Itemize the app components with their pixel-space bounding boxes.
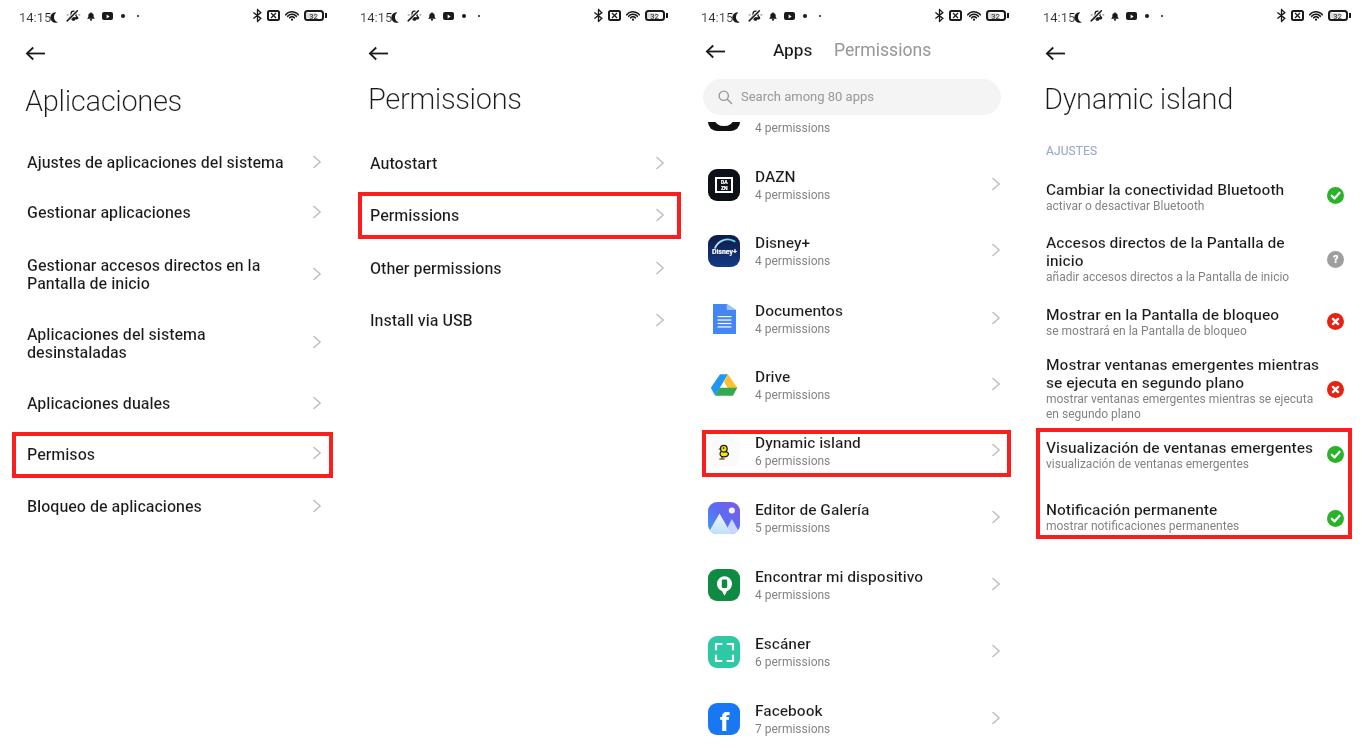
button[interactable]: f xyxy=(682,686,1024,752)
button[interactable]: Gestionar aplicaciones xyxy=(0,190,341,234)
button[interactable]: Back xyxy=(358,33,398,73)
button[interactable]: Editor de Galería xyxy=(682,485,1024,551)
button[interactable]: Apps xyxy=(764,32,822,68)
button[interactable]: Aplicaciones del sistema desinstaladas xyxy=(0,305,341,363)
staticText: 14:15 xyxy=(1043,10,1076,25)
staticText: Notificación permanente xyxy=(1046,501,1322,519)
staticText: visualización de ventanas emergentes xyxy=(1046,457,1322,471)
button[interactable]: Mostrar ventanas emergentes mientras se … xyxy=(1024,352,1366,427)
button[interactable]: Mostrar en la Pantalla de bloqueo xyxy=(1024,302,1366,344)
staticText: 7 permissions xyxy=(755,722,831,736)
staticText: añadir accesos directos a la Pantalla de… xyxy=(1046,270,1322,284)
staticText: ZN xyxy=(721,185,728,191)
staticText: Accesos directos de la Pantalla de inici… xyxy=(1046,234,1322,270)
staticText: Visualización de ventanas emergentes xyxy=(1046,439,1322,457)
staticText: Editor de Galería xyxy=(755,501,870,519)
staticText: Cambiar la conectividad Bluetooth xyxy=(1046,181,1322,199)
staticText: Ajustes de aplicaciones del sistema xyxy=(27,153,299,172)
staticText: se mostrará en la Pantalla de bloqueo xyxy=(1046,324,1322,338)
staticText: 32 xyxy=(309,12,319,21)
staticText: Mostrar en la Pantalla de bloqueo xyxy=(1046,306,1322,324)
staticText: 6 permissions xyxy=(755,655,831,669)
staticText: Aplicaciones del sistema desinstaladas xyxy=(27,325,299,362)
staticText: AJUSTES xyxy=(1046,144,1098,158)
button[interactable]: Bloqueo de aplicaciones xyxy=(0,484,341,528)
staticText: 32 xyxy=(650,12,660,21)
staticText: 4 permissions xyxy=(755,254,831,268)
button[interactable]: Dynamic island xyxy=(682,418,1024,484)
staticText: Dynamic island xyxy=(755,434,861,452)
button[interactable]: Notificación permanente xyxy=(1024,497,1366,539)
button[interactable]: Back xyxy=(1035,33,1075,73)
button[interactable]: Install via USB xyxy=(341,298,682,342)
staticText: ? xyxy=(1333,253,1339,266)
staticText: Encontrar mi dispositivo xyxy=(755,568,924,586)
button[interactable]: Escáner xyxy=(682,619,1024,685)
staticText: Permissions xyxy=(834,40,932,61)
button[interactable]: Gestionar accesos directos en la Pantall… xyxy=(0,236,341,294)
staticText: 4 permissions xyxy=(755,188,831,202)
staticText: Bloqueo de aplicaciones xyxy=(27,497,299,516)
staticText: Permissions xyxy=(368,82,522,116)
button[interactable]: Cambiar la conectividad Bluetooth xyxy=(1024,177,1366,219)
staticText: DAZN xyxy=(755,168,796,186)
button[interactable]: Disney+ xyxy=(682,218,1024,284)
button[interactable]: Permissions xyxy=(358,192,681,239)
staticText: Other permissions xyxy=(370,259,642,278)
staticText: mostrar ventanas emergentes mientras se … xyxy=(1046,392,1322,421)
button[interactable]: Visualización de ventanas emergentes xyxy=(1024,435,1366,477)
button[interactable]: Aplicaciones duales xyxy=(0,381,341,425)
staticText: 4 permissions xyxy=(755,322,831,336)
button[interactable]: Search among 80 apps xyxy=(703,79,1001,115)
staticText: Disney+ xyxy=(755,234,811,252)
staticText: Gestionar accesos directos en la Pantall… xyxy=(27,256,299,293)
staticText: Aplicaciones xyxy=(25,84,182,118)
button[interactable]: Autostart xyxy=(341,141,682,185)
button[interactable]: Documentos xyxy=(682,286,1024,352)
button[interactable]: Other permissions xyxy=(341,246,682,290)
staticText: activar o desactivar Bluetooth xyxy=(1046,199,1322,213)
button[interactable]: Permisos xyxy=(12,432,333,478)
button[interactable]: Back xyxy=(15,33,55,73)
staticText: 14:15 xyxy=(701,10,734,25)
staticText: mostrar notificaciones permanentes xyxy=(1046,519,1322,533)
staticText: 32 xyxy=(991,12,1001,21)
button[interactable]: Permissions xyxy=(825,32,940,68)
button[interactable]: DA xyxy=(682,152,1024,218)
staticText: 4 permissions xyxy=(755,388,831,402)
staticText: 6 permissions xyxy=(755,454,831,468)
staticText: 14:15 xyxy=(19,10,52,25)
staticText: Facebook xyxy=(755,702,823,720)
staticText: Mostrar ventanas emergentes mientras se … xyxy=(1046,356,1322,392)
staticText: 4 permissions xyxy=(755,588,831,602)
button[interactable]: Accesos directos de la Pantalla de inici… xyxy=(1024,230,1366,290)
staticText: Drive xyxy=(755,368,791,386)
button[interactable]: 4 permissions xyxy=(682,116,1024,144)
staticText: Autostart xyxy=(370,154,642,173)
staticText: Disney+ xyxy=(712,248,737,256)
button[interactable]: Ajustes de aplicaciones del sistema xyxy=(0,140,341,184)
staticText: Gestionar aplicaciones xyxy=(27,203,299,222)
staticText: Permissions xyxy=(370,206,460,225)
staticText: Apps xyxy=(773,40,813,60)
staticText: Search among 80 apps xyxy=(741,89,874,104)
staticText: 14:15 xyxy=(360,10,393,25)
staticText: Permisos xyxy=(27,445,96,464)
button[interactable]: Encontrar mi dispositivo xyxy=(682,552,1024,618)
staticText: Install via USB xyxy=(370,311,642,330)
staticText: Dynamic island xyxy=(1044,82,1233,116)
staticText: 4 permissions xyxy=(755,121,831,135)
staticText: DA xyxy=(721,179,728,185)
staticText: Documentos xyxy=(755,302,843,320)
button[interactable]: Back xyxy=(695,31,735,71)
staticText: Escáner xyxy=(755,635,811,653)
staticText: Aplicaciones duales xyxy=(27,394,299,413)
staticText: 5 permissions xyxy=(755,521,831,535)
staticText: f xyxy=(720,707,730,735)
button[interactable]: Drive xyxy=(682,352,1024,418)
staticText: 32 xyxy=(1333,12,1343,21)
